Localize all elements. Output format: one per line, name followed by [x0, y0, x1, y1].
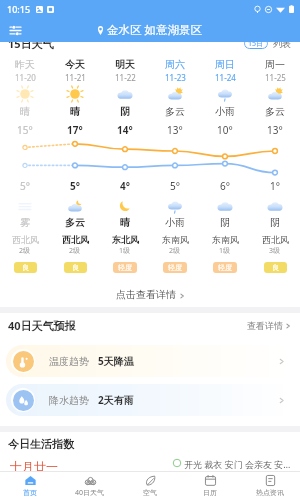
staticText: 多云 [165, 105, 185, 118]
button[interactable]: 5° [50, 179, 100, 273]
staticText: 晴 [20, 105, 30, 118]
staticText: 晴 [120, 216, 130, 229]
staticText: 11-24 [215, 72, 236, 83]
staticText: 查看详情 [247, 320, 283, 331]
staticText: 14° [117, 123, 133, 137]
staticText: 列表 [273, 38, 291, 49]
staticText: 13° [267, 123, 283, 137]
staticText: 15日 [248, 39, 264, 49]
button[interactable]: 降水趋势 [6, 384, 293, 416]
staticText: 6° [220, 179, 230, 193]
staticText: 西北风 [12, 234, 39, 245]
staticText: 15日天气 [8, 36, 54, 51]
staticText: 东南风 [162, 234, 189, 245]
staticText: 轻度 [118, 263, 132, 272]
button[interactable]: 今天 [50, 58, 100, 137]
staticText: 13° [167, 123, 183, 137]
button[interactable]: 首页 [0, 472, 60, 500]
button[interactable]: 日历 [180, 472, 240, 500]
staticText: 今天 [65, 58, 85, 71]
button[interactable]: 热点资讯 [240, 472, 300, 500]
button[interactable]: 点击查看详情 [0, 273, 300, 301]
staticText: 温度趋势 [49, 355, 89, 368]
staticText: 轻度 [168, 263, 182, 272]
staticText: 11-25 [265, 72, 286, 83]
staticText: 小雨 [215, 105, 235, 118]
staticText: 热点资讯 [256, 488, 284, 497]
button[interactable]: 周六 [150, 58, 200, 137]
button[interactable]: 周日 [200, 58, 250, 137]
button[interactable]: 4° [100, 179, 150, 273]
staticText: 11-21 [65, 72, 86, 83]
staticText: 点击查看详情 [116, 288, 176, 301]
button[interactable]: 15日 [244, 38, 268, 49]
staticText: 雾 [20, 216, 30, 229]
button[interactable]: 1° [250, 179, 300, 273]
staticText: 东北风 [112, 234, 139, 245]
staticText: 11-22 [115, 72, 136, 83]
staticText: 多云 [265, 105, 285, 118]
staticText: 阴 [270, 216, 280, 229]
staticText: 5° [70, 179, 80, 193]
staticText: 良 [22, 263, 29, 272]
staticText: 明天 [115, 58, 135, 71]
staticText: 17° [67, 123, 83, 137]
staticText: 周一 [265, 58, 285, 71]
button[interactable]: 40日天气 [60, 472, 120, 500]
staticText: 降水趋势 [49, 394, 89, 407]
staticText: 良 [272, 263, 279, 272]
staticText: 周六 [165, 58, 185, 71]
staticText: 5° [170, 179, 180, 193]
button[interactable]: 6° [200, 179, 250, 273]
button[interactable]: Menu [6, 21, 24, 39]
staticText: 东南风 [212, 234, 239, 245]
staticText: 10° [217, 123, 233, 137]
staticText: 1级 [119, 246, 131, 256]
button[interactable]: 5° [0, 179, 50, 273]
button[interactable]: 温度趋势 [6, 345, 293, 377]
staticText: 阴 [220, 216, 230, 229]
staticText: 西北风 [262, 234, 289, 245]
button[interactable]: 查看详情 [247, 320, 291, 331]
staticText: 40日天气预报 [8, 318, 76, 333]
staticText: 40日天气 [75, 488, 105, 498]
staticText: 11-23 [165, 72, 186, 83]
staticText: 3级 [269, 246, 281, 256]
staticText: 11-20 [15, 72, 36, 83]
staticText: 5天降温 [98, 354, 134, 368]
staticText: 15° [17, 123, 33, 137]
staticText: 金水区 如意湖景区 [107, 22, 202, 38]
staticText: 开光 裁衣 安门 会亲友 安… [184, 458, 291, 470]
staticText: 轻度 [218, 263, 232, 272]
staticText: 周日 [215, 58, 235, 71]
staticText: 10:15 [7, 3, 31, 15]
staticText: 十月廿一 [10, 459, 58, 474]
staticText: 1° [270, 179, 280, 193]
staticText: 4° [120, 179, 130, 193]
staticText: 西北风 [62, 234, 89, 245]
staticText: 良 [72, 263, 79, 272]
staticText: 2天有雨 [98, 393, 134, 407]
button[interactable]: 明天 [100, 58, 150, 137]
staticText: 2级 [19, 246, 31, 256]
staticText: 晴 [70, 105, 80, 118]
staticText: 5° [20, 179, 30, 193]
staticText: 1级 [219, 246, 231, 256]
staticText: 多云 [65, 216, 85, 229]
staticText: 首页 [23, 488, 37, 497]
staticText: 日历 [203, 488, 217, 497]
staticText: 空气 [143, 488, 157, 497]
staticText: 昨天 [15, 58, 35, 71]
button[interactable]: 昨天 [0, 58, 50, 137]
staticText: 2级 [169, 246, 181, 256]
staticText: 今日生活指数 [8, 437, 74, 451]
button[interactable]: 金水区 如意湖景区 [95, 20, 204, 40]
button[interactable]: 5° [150, 179, 200, 273]
staticText: 阴 [120, 105, 130, 118]
button[interactable]: 周一 [250, 58, 300, 137]
staticText: 2级 [69, 246, 81, 256]
staticText: 小雨 [165, 216, 185, 229]
button[interactable]: 空气 [120, 472, 180, 500]
